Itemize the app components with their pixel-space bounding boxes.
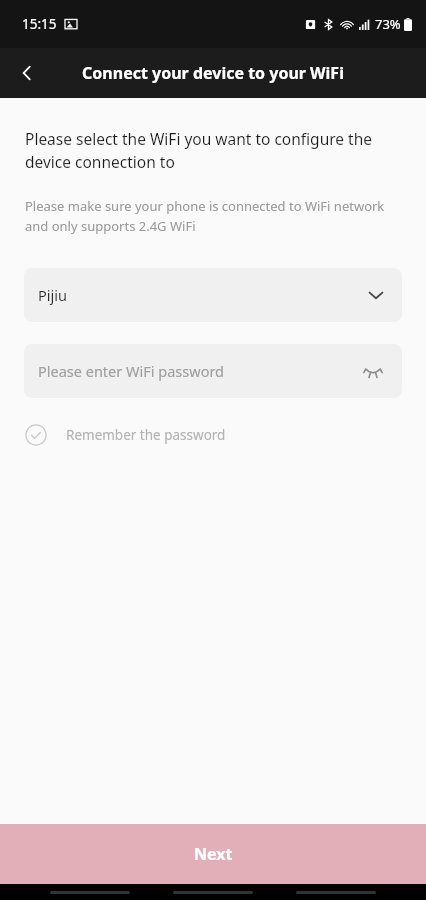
staticText: Please make sure your phone is connected… — [25, 197, 398, 235]
button[interactable]: Please enter WiFi password — [24, 344, 402, 398]
staticText: 73% — [375, 15, 401, 33]
staticText: Please select the WiFi you want to confi… — [25, 128, 396, 173]
button[interactable]: Remember the password — [24, 419, 227, 451]
button[interactable]: Back — [10, 56, 44, 90]
staticText: Connect your device to your WiFi — [82, 62, 344, 84]
staticText: Next — [194, 843, 233, 865]
button[interactable]: Show password — [360, 358, 386, 384]
staticText: 15:15 — [22, 15, 57, 33]
staticText: Pijiu — [38, 285, 366, 305]
button[interactable]: Next — [0, 824, 426, 884]
button[interactable]: Pijiu — [24, 268, 402, 322]
staticText: Remember the password — [66, 426, 226, 444]
staticText: Please enter WiFi password — [38, 361, 360, 381]
